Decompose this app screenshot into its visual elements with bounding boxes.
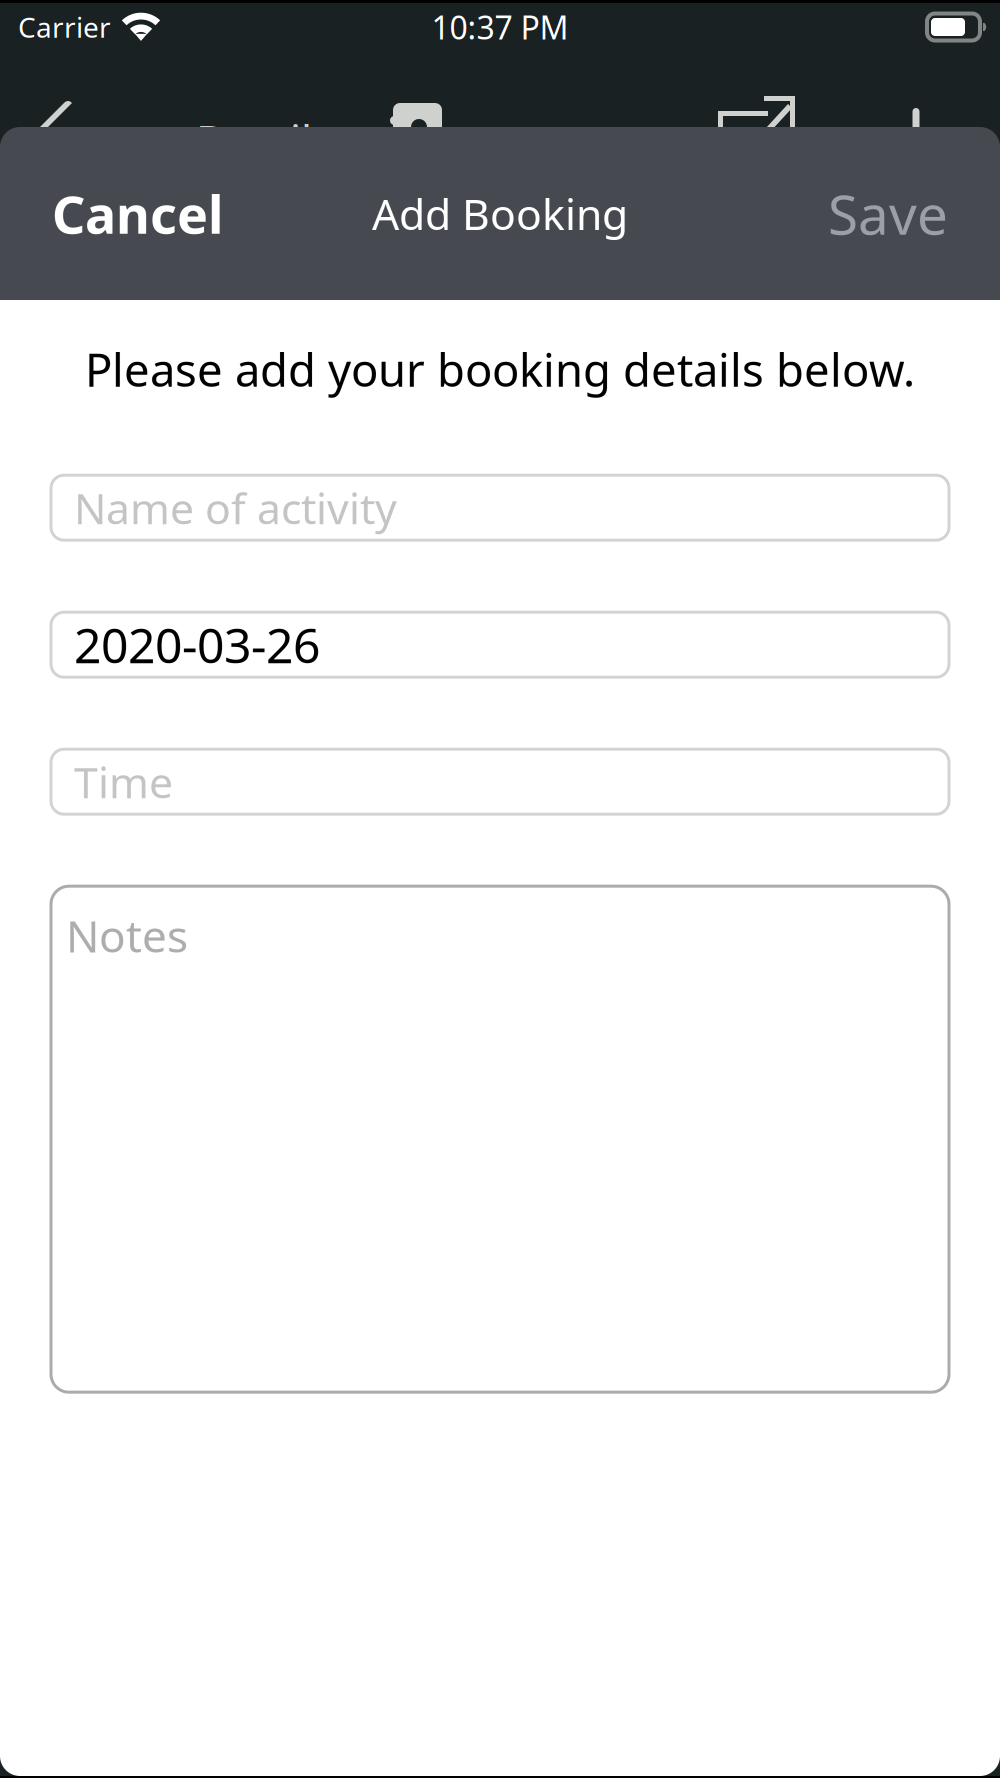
button[interactable]: Cancel (38, 165, 237, 262)
button[interactable]: Delete (896, 108, 936, 152)
staticText: 10:37 PM (431, 6, 568, 48)
staticText: Save (828, 177, 948, 250)
staticText: Time (74, 753, 173, 810)
staticText: Carrier (18, 8, 111, 46)
button[interactable]: Name of activity (51, 475, 949, 540)
staticText: Add Booking (372, 185, 628, 242)
button[interactable]: Contact (390, 103, 446, 153)
staticText: Notes (66, 906, 188, 965)
button[interactable]: Share (718, 96, 800, 166)
button[interactable]: Save (814, 163, 962, 264)
button[interactable]: 2020-03-26 (51, 612, 949, 677)
staticText: Name of activity (74, 479, 397, 536)
staticText: Cancel (52, 179, 223, 248)
staticText: 2020-03-26 (74, 613, 320, 676)
button[interactable]: Edit (37, 74, 127, 164)
staticText: Details (196, 111, 332, 168)
button[interactable]: Time (51, 749, 949, 814)
button[interactable]: Notes (51, 886, 949, 1392)
staticText: Please add your booking details below. (85, 339, 915, 399)
